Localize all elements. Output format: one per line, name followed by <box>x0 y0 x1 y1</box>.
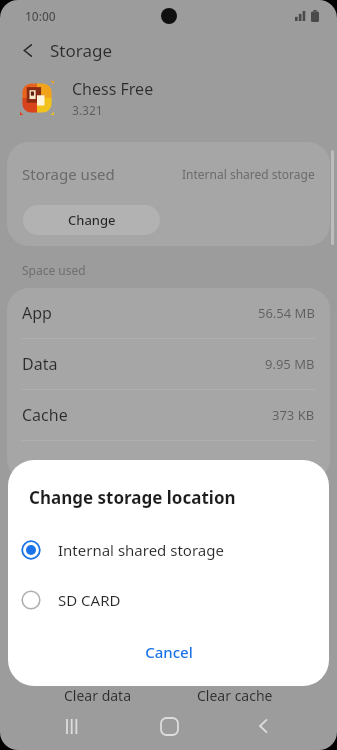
button[interactable]: Home <box>147 704 191 748</box>
button[interactable]: SD CARD <box>8 583 329 617</box>
staticText: 373 KB <box>272 406 315 424</box>
staticText: Chess Free <box>72 78 154 100</box>
staticText: Internal shared storage <box>58 540 224 560</box>
staticText: Cancel <box>145 642 193 662</box>
staticText: Change <box>68 211 116 229</box>
staticText: 56.54 MB <box>258 304 315 322</box>
staticText: Storage used <box>22 164 115 184</box>
button[interactable]: Recents <box>51 704 95 748</box>
button[interactable]: App <box>7 288 330 338</box>
button[interactable]: Data <box>7 339 330 389</box>
button[interactable]: Change <box>23 205 160 235</box>
staticText: Internal shared storage <box>182 166 315 182</box>
staticText: Clear cache <box>197 686 273 705</box>
staticText: 10:00 <box>25 8 56 24</box>
staticText: Space used <box>22 262 86 278</box>
button[interactable]: Back <box>14 36 42 64</box>
staticText: 3.321 <box>72 102 103 118</box>
staticText: SD CARD <box>58 590 121 610</box>
staticText: Cache <box>22 404 68 426</box>
staticText: Clear data <box>64 686 132 705</box>
button[interactable]: Cancel <box>8 630 329 674</box>
button[interactable]: Cache <box>7 390 330 440</box>
staticText: Storage <box>50 39 113 62</box>
staticText: App <box>22 302 52 324</box>
staticText: Data <box>22 353 58 375</box>
staticText: Change storage location <box>29 486 236 509</box>
staticText: 9.95 MB <box>265 355 315 373</box>
button[interactable]: Back <box>242 704 286 748</box>
button[interactable]: Internal shared storage <box>8 533 329 567</box>
